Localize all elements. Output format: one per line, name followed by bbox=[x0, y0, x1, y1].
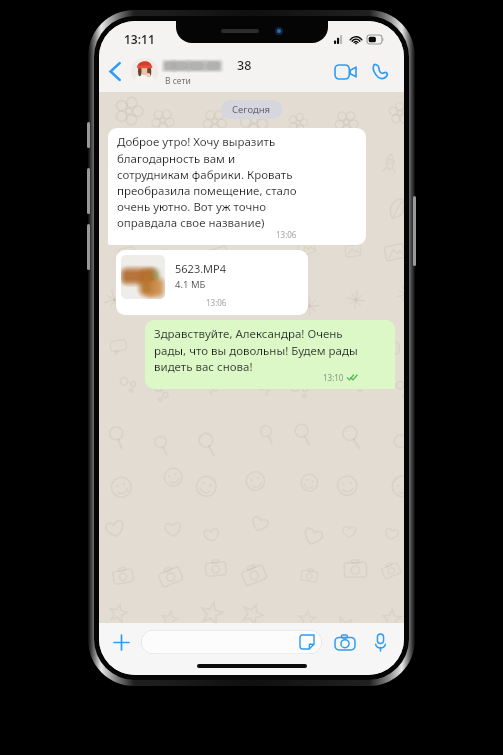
staticText: 4.1 МБ bbox=[175, 278, 206, 291]
button[interactable]: 38 bbox=[131, 51, 328, 92]
staticText: 13:06 bbox=[276, 229, 297, 240]
staticText: 13:06 bbox=[206, 297, 227, 308]
button[interactable]: 5623.MP4 bbox=[116, 250, 308, 315]
staticText: 13:11 bbox=[124, 31, 155, 47]
button[interactable]: Voice message bbox=[367, 629, 393, 655]
staticText: Сегодня bbox=[232, 103, 271, 116]
staticText: В сети bbox=[165, 75, 191, 87]
button[interactable]: Attach bbox=[108, 629, 134, 655]
button[interactable]: Call bbox=[362, 51, 398, 92]
staticText: 38 bbox=[237, 57, 252, 74]
staticText: Здравствуйте, Александра! Очень рады, чт… bbox=[154, 326, 358, 374]
button[interactable]: Camera bbox=[332, 629, 358, 655]
button[interactable]: Stickers bbox=[141, 630, 322, 654]
staticText: Доброе утро! Хочу выразить благодарность… bbox=[117, 134, 297, 230]
button[interactable]: Stickers bbox=[299, 634, 315, 650]
button[interactable]: Доброе утро! Хочу выразить благодарность… bbox=[108, 128, 366, 245]
staticText: 13:10 bbox=[323, 372, 344, 383]
button[interactable]: Здравствуйте, Александра! Очень рады, чт… bbox=[145, 320, 395, 389]
staticText: 5623.MP4 bbox=[175, 261, 227, 276]
button[interactable]: Video call bbox=[328, 51, 362, 92]
button[interactable]: Back bbox=[99, 51, 131, 92]
